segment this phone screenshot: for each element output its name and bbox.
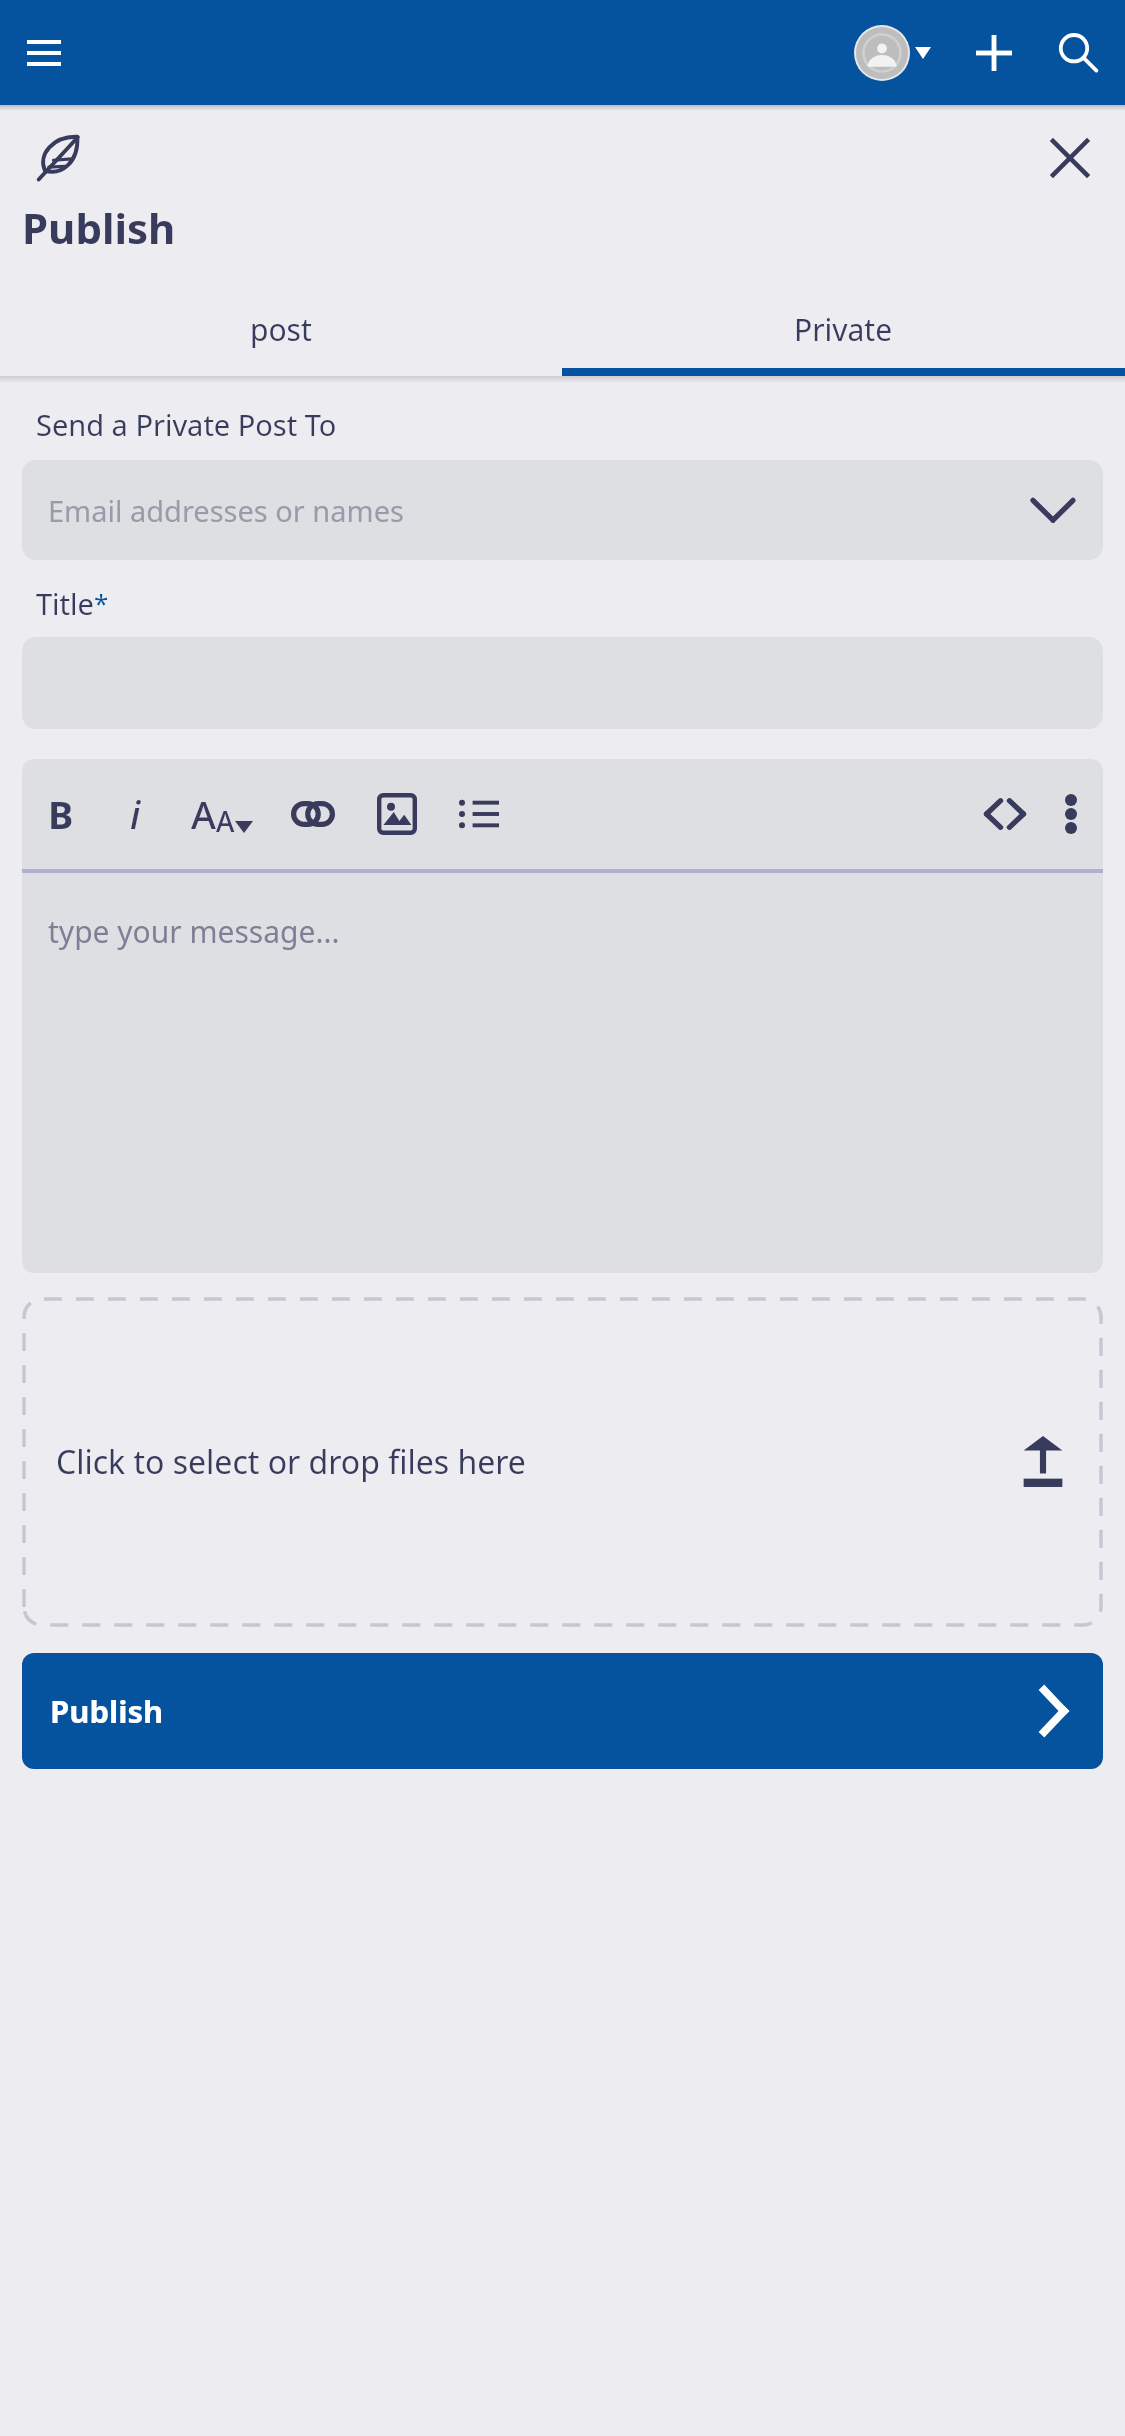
staticText: *	[94, 585, 109, 620]
staticText: post	[250, 309, 312, 350]
button[interactable]: Search	[1049, 24, 1107, 82]
staticText: Click to select or drop files here	[56, 1440, 526, 1484]
staticText: A	[216, 802, 235, 840]
button[interactable]: Private	[562, 290, 1125, 368]
button[interactable]: Close	[1039, 127, 1101, 189]
button[interactable]: Italic	[126, 774, 145, 854]
button[interactable]: Code	[979, 774, 1031, 854]
staticText: Publish	[50, 1690, 164, 1732]
button[interactable]: post	[0, 290, 562, 368]
button[interactable]: Text size	[187, 774, 257, 854]
staticText: i	[130, 788, 141, 840]
button[interactable]: Publish	[22, 1653, 1103, 1769]
button[interactable]: Insert link	[287, 774, 339, 854]
staticText: Email addresses or names	[48, 491, 404, 530]
staticText: Send a Private Post To	[36, 405, 337, 444]
staticText: Private	[794, 309, 893, 350]
button[interactable]: Account	[850, 25, 935, 81]
button[interactable]: Click to select or drop files here	[22, 1297, 1103, 1627]
button[interactable]: Bulleted list	[455, 774, 503, 854]
button[interactable]: Compose	[30, 129, 86, 185]
staticText: Publish	[22, 199, 176, 256]
button[interactable]: Menu	[16, 25, 72, 81]
staticText: A	[191, 788, 216, 840]
button[interactable]: Insert image	[373, 774, 421, 854]
button[interactable]: type your message...	[22, 873, 1103, 1273]
staticText: Title	[36, 584, 94, 623]
button[interactable]: More options	[1061, 774, 1081, 854]
staticText: B	[48, 788, 74, 840]
staticText: type your message...	[48, 911, 340, 952]
button[interactable]: Add	[965, 24, 1023, 82]
button[interactable]: Bold	[44, 774, 78, 854]
button[interactable]: Email addresses or names	[22, 460, 1103, 560]
